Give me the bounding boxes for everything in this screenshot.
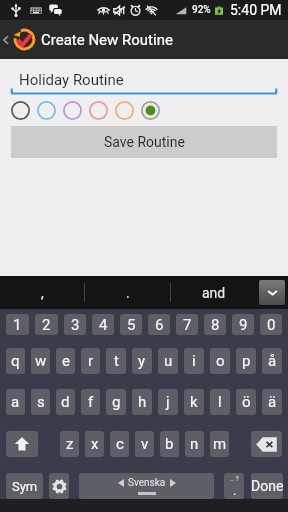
staticText: m <box>213 435 227 453</box>
staticText: 4 <box>99 316 108 334</box>
staticText: , <box>41 285 44 301</box>
staticText: 2 <box>42 316 51 334</box>
staticText: x <box>91 435 99 453</box>
button[interactable]: z <box>60 431 79 457</box>
staticText: 0 <box>267 316 276 334</box>
button[interactable]: Selected colour swatch <box>137 99 163 121</box>
button[interactable]: 3 <box>64 314 86 335</box>
staticText: . <box>126 285 130 301</box>
button[interactable]: e <box>56 348 75 374</box>
button[interactable]: n <box>185 431 204 457</box>
staticText: l <box>218 393 222 411</box>
staticText: d <box>61 393 70 411</box>
button[interactable]: 7 <box>176 314 198 335</box>
button[interactable]: Done <box>251 473 283 499</box>
staticText: i <box>192 352 196 370</box>
button[interactable]: and <box>171 276 256 309</box>
staticText: c <box>116 435 124 453</box>
button[interactable]: v <box>135 431 154 457</box>
staticText: q <box>11 352 20 370</box>
button[interactable]: h <box>132 389 152 415</box>
button[interactable]: p <box>236 348 256 374</box>
button[interactable]: l <box>210 389 230 415</box>
staticText: 6 <box>155 316 164 334</box>
button[interactable]: a <box>6 389 25 415</box>
staticText: f <box>88 393 94 411</box>
button[interactable]: 6 <box>148 314 170 335</box>
button[interactable]: j <box>158 389 178 415</box>
button[interactable]: Backspace <box>251 431 282 457</box>
staticText: Holiday Routine <box>19 71 124 89</box>
button[interactable]: s <box>31 389 50 415</box>
staticText: u <box>164 352 173 370</box>
button[interactable]: 8 <box>204 314 226 335</box>
staticText: z <box>66 435 74 453</box>
button[interactable]: Sym <box>6 473 43 499</box>
button[interactable]: w <box>31 348 50 374</box>
button[interactable]: Space <box>79 473 214 499</box>
staticText: e <box>62 352 70 370</box>
button[interactable]: 1 <box>6 314 29 335</box>
button[interactable]: q <box>6 348 25 374</box>
staticText: j <box>166 393 170 411</box>
button[interactable]: i <box>184 348 204 374</box>
staticText: 92% <box>192 4 211 16</box>
staticText: t <box>114 352 119 370</box>
staticText: b <box>165 435 174 453</box>
button[interactable]: 2 <box>35 314 58 335</box>
staticText: å <box>268 352 277 370</box>
button[interactable]: Colour swatch <box>59 99 85 121</box>
button[interactable]: ö <box>236 389 256 415</box>
button[interactable]: Punctuation <box>224 473 244 499</box>
staticText: ä <box>268 393 277 411</box>
button[interactable]: Colour swatch <box>33 99 59 121</box>
button[interactable]: Keyboard settings <box>49 473 69 499</box>
other: Navigate up <box>2 33 10 47</box>
button[interactable]: Colour swatch <box>111 99 137 121</box>
staticText: s <box>37 393 45 411</box>
button[interactable]: Navigate up <box>0 20 288 59</box>
button[interactable]: t <box>106 348 126 374</box>
button[interactable]: Colour swatch <box>7 99 33 121</box>
staticText: a <box>11 393 20 411</box>
button[interactable]: c <box>110 431 129 457</box>
staticText: y <box>138 352 146 370</box>
button[interactable]: . <box>85 276 170 309</box>
button[interactable]: 4 <box>92 314 114 335</box>
button[interactable]: ä <box>262 389 282 415</box>
staticText: 5:40 PM <box>230 2 282 18</box>
button[interactable]: Save Routine <box>11 126 277 158</box>
button[interactable]: g <box>106 389 126 415</box>
staticText: k <box>190 393 198 411</box>
button[interactable]: , <box>0 276 84 309</box>
button[interactable]: k <box>184 389 204 415</box>
button[interactable]: b <box>160 431 179 457</box>
staticText: 9 <box>239 316 248 334</box>
button[interactable]: m <box>210 431 229 457</box>
staticText: 5 <box>127 316 136 334</box>
staticText: 3 <box>71 316 80 334</box>
button[interactable]: o <box>210 348 230 374</box>
staticText: .. ? <box>230 475 239 483</box>
staticText: v <box>141 435 149 453</box>
staticText: ö <box>242 393 251 411</box>
button[interactable]: Colour swatch <box>85 99 111 121</box>
button[interactable]: 5 <box>120 314 142 335</box>
button[interactable]: 0 <box>260 314 282 335</box>
button[interactable]: Expand suggestions <box>259 280 285 305</box>
button[interactable]: y <box>132 348 152 374</box>
button[interactable]: x <box>85 431 104 457</box>
button[interactable]: 9 <box>232 314 254 335</box>
staticText: w <box>35 352 47 370</box>
button[interactable]: r <box>81 348 100 374</box>
button[interactable]: f <box>81 389 100 415</box>
staticText: g <box>112 393 121 411</box>
staticText: 8 <box>211 316 220 334</box>
staticText: 7 <box>183 316 192 334</box>
button[interactable]: å <box>262 348 282 374</box>
button[interactable]: u <box>158 348 178 374</box>
button[interactable]: Shift <box>6 431 38 457</box>
button[interactable]: d <box>56 389 75 415</box>
staticText: 1 <box>13 316 22 334</box>
staticText: h <box>138 393 147 411</box>
